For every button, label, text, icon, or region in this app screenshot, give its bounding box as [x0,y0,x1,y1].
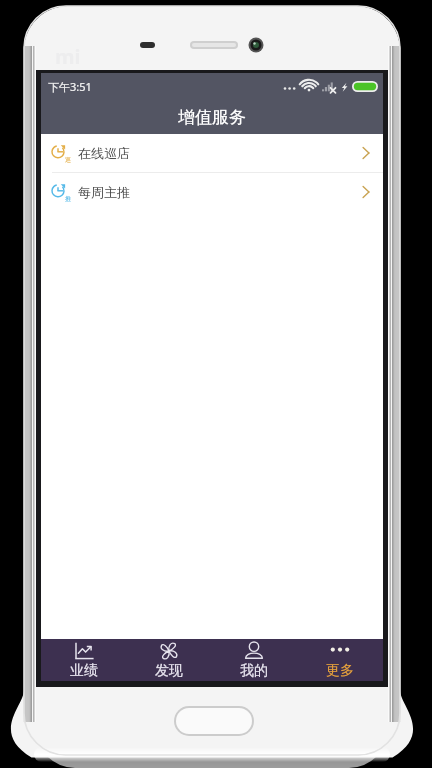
staticText: 业绩 [70,662,98,679]
staticText: 巡 [65,156,71,164]
staticText: 在线巡店 [78,145,130,161]
staticText: 每周主推 [78,184,130,200]
staticText: 下午3:51 [48,79,92,94]
button[interactable]: 巡 [41,134,383,172]
staticText: 发现 [155,662,183,679]
staticText: 更多 [326,662,354,679]
button[interactable]: 更多 [297,639,383,681]
button[interactable]: 业绩 [41,639,126,681]
button[interactable]: 我的 [211,639,297,681]
staticText: 增值服务 [178,107,246,128]
staticText: 我的 [240,662,268,679]
button[interactable]: 推 [41,173,383,211]
staticText: 推 [65,195,71,203]
button[interactable]: 发现 [126,639,211,681]
